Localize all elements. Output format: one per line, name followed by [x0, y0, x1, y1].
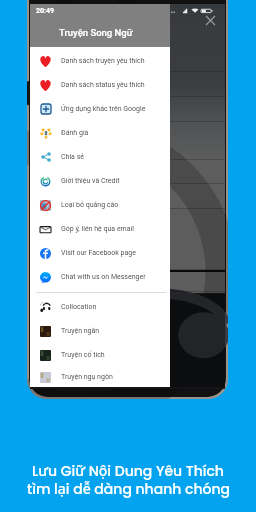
staticText: Giới thiệu và Credit — [61, 177, 120, 185]
button[interactable]: Chat with us on Messenger — [30, 265, 170, 289]
staticText: Lưu Giữ Nội Dung Yêu Thích — [32, 461, 224, 481]
button[interactable]: Danh sách truyện yêu thích — [30, 49, 170, 73]
button[interactable]: Giới thiệu và Credit — [30, 169, 170, 193]
staticText: Chat with us on Messenger — [61, 273, 146, 281]
staticText: Truyện cổ tích — [61, 351, 105, 359]
staticText: ehavior — [31, 131, 59, 141]
button[interactable]: Ứng dụng khác trên Google — [30, 97, 170, 121]
button[interactable]: Close navigation drawer — [200, 10, 220, 30]
button[interactable]: Truyện ngụ ngôn — [30, 367, 170, 387]
staticText: Góp ý, liên hệ qua email — [61, 225, 134, 233]
staticText: Truyện Song Ngữ — [59, 27, 133, 38]
staticText: Đánh giá — [61, 129, 89, 137]
staticText: Danh sách status yêu thích — [61, 81, 145, 89]
button[interactable]: Góp ý, liên hệ qua email — [30, 217, 170, 241]
staticText: tìm lại dễ dàng nhanh chóng — [27, 479, 230, 499]
button[interactable]: Danh sách status yêu thích — [30, 73, 170, 97]
button[interactable]: Visit our Facebook page — [30, 241, 170, 265]
staticText: Truyện ngụ ngôn — [61, 373, 113, 381]
button[interactable]: Truyện ngắn — [30, 319, 170, 343]
staticText: Collocation — [61, 303, 97, 311]
staticText: Truyện ngắn — [61, 327, 100, 335]
staticText: ết quả — [31, 240, 55, 250]
staticText: 20:49 — [36, 7, 55, 15]
button[interactable]: Chia sẻ — [30, 145, 170, 169]
button[interactable]: Đánh giá — [30, 121, 170, 145]
button[interactable]: Collocation — [30, 295, 170, 319]
button[interactable]: Truyện cổ tích — [30, 343, 170, 367]
button[interactable]: Loại bỏ quảng cáo — [30, 193, 170, 217]
staticText: Visit our Facebook page — [61, 249, 136, 257]
staticText: Danh sách truyện yêu thích — [61, 57, 145, 65]
staticText: Loại bỏ quảng cáo — [61, 201, 119, 209]
staticText: Chia sẻ — [61, 153, 84, 161]
staticText: Ứng dụng khác trên Google — [61, 105, 146, 113]
